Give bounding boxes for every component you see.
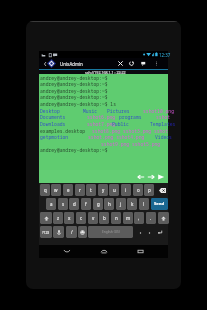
- button[interactable]: [158, 212, 169, 224]
- button[interactable]: [156, 184, 168, 196]
- button[interactable]: m: [123, 212, 133, 224]
- button[interactable]: u: [109, 184, 119, 196]
- button[interactable]: b: [99, 212, 109, 224]
- button[interactable]: z: [53, 212, 63, 224]
- button[interactable]: k: [127, 198, 137, 210]
- button[interactable]: Reconnect: [126, 58, 137, 69]
- staticText: Public: [112, 121, 129, 127]
- staticText: 12:37: [159, 52, 171, 58]
- staticText: /: [71, 229, 73, 235]
- button[interactable]: f: [81, 198, 91, 210]
- staticText: sshot: [156, 114, 171, 120]
- staticText: s: [62, 201, 65, 207]
- staticText: Music: [83, 108, 98, 114]
- staticText: getpmotion: [40, 134, 69, 140]
- button[interactable]: q: [40, 184, 50, 196]
- button[interactable]: t: [86, 184, 96, 196]
- staticText: sshot9.png sshot5.png: [101, 141, 161, 147]
- staticText: n: [115, 215, 118, 221]
- button[interactable]: h: [104, 198, 114, 210]
- button[interactable]: i: [121, 184, 131, 196]
- staticText: e: [67, 187, 70, 193]
- staticText: w: [54, 187, 58, 193]
- button[interactable]: a: [46, 198, 56, 210]
- button[interactable]: .: [146, 212, 156, 224]
- staticText: andrey@andrey-desktop:~$: [40, 147, 108, 153]
- staticText: f: [85, 201, 87, 207]
- button[interactable]: Home: [98, 246, 109, 257]
- staticText: Send: [154, 201, 165, 207]
- staticText: q: [44, 187, 47, 193]
- button[interactable]: [53, 226, 64, 238]
- staticText: r: [79, 187, 81, 193]
- button[interactable]: Disconnect: [115, 58, 126, 69]
- button[interactable]: ?123: [40, 226, 52, 238]
- staticText: Templates: [150, 121, 176, 127]
- button[interactable]: English (US): [88, 226, 133, 238]
- button[interactable]: Send: [151, 198, 168, 210]
- staticText: ?123: [42, 230, 50, 235]
- staticText: x: [68, 215, 71, 221]
- button[interactable]: x: [64, 212, 74, 224]
- staticText: sshot8.png sshot3.png sshot: [92, 128, 168, 134]
- staticText: m: [126, 215, 131, 221]
- staticText: c: [80, 215, 83, 221]
- staticText: b: [103, 215, 106, 221]
- button[interactable]: Navigate up: [39, 58, 60, 69]
- staticText: h: [108, 201, 111, 207]
- button[interactable]: o: [133, 184, 143, 196]
- button[interactable]: y: [98, 184, 108, 196]
- staticText: andrey@andrey-desktop:~$: [40, 88, 108, 94]
- button[interactable]: ,: [134, 212, 144, 224]
- staticText: v: [92, 215, 95, 221]
- button[interactable]: g: [93, 198, 103, 210]
- button[interactable]: s: [58, 198, 68, 210]
- button[interactable]: Recent apps: [135, 246, 146, 257]
- button[interactable]: d: [69, 198, 79, 210]
- button[interactable]: [78, 226, 87, 238]
- staticText: Downloads: [40, 121, 66, 127]
- staticText: sshot10.png: [143, 108, 174, 114]
- button[interactable]: [145, 226, 154, 238]
- button[interactable]: e: [63, 184, 73, 196]
- button[interactable]: Send command: [156, 171, 166, 183]
- staticText: .: [150, 215, 152, 221]
- staticText: y: [102, 187, 105, 193]
- button[interactable]: Show keyboard: [138, 58, 149, 69]
- button[interactable]: /: [66, 226, 77, 238]
- staticText: j: [120, 201, 122, 207]
- button[interactable]: r: [75, 184, 85, 196]
- button[interactable]: w: [51, 184, 61, 196]
- staticText: Desktop: [40, 108, 60, 114]
- button[interactable]: [155, 226, 165, 238]
- staticText: ,: [138, 215, 140, 221]
- staticText: a: [50, 201, 53, 207]
- button[interactable]: Move cursor right: [146, 171, 156, 183]
- staticText: u: [113, 187, 116, 193]
- button[interactable]: More options: [151, 58, 162, 69]
- button[interactable]: j: [116, 198, 126, 210]
- staticText: andrey@andrey-desktop:~$ ls: [40, 101, 116, 107]
- staticText: programs: [119, 114, 142, 120]
- staticText: i: [125, 187, 127, 193]
- staticText: k: [131, 201, 134, 207]
- staticText: ssh://192.168.1.1 : 22:22: [85, 70, 126, 74]
- button[interactable]: Back: [61, 246, 72, 257]
- staticText: d: [73, 201, 76, 207]
- staticText: l: [143, 201, 145, 207]
- staticText: sshot.png sshot4.png: [88, 134, 145, 140]
- staticText: t: [90, 187, 92, 193]
- button[interactable]: l: [139, 198, 149, 210]
- button[interactable]: Move cursor left: [136, 171, 146, 183]
- staticText: UnixAdmin: [60, 61, 83, 67]
- button[interactable]: [136, 226, 144, 238]
- staticText: g: [97, 201, 100, 207]
- button[interactable]: v: [88, 212, 98, 224]
- staticText: Videos: [155, 134, 172, 140]
- staticText: o: [137, 187, 140, 193]
- button[interactable]: c: [76, 212, 86, 224]
- button[interactable]: [40, 212, 52, 224]
- button[interactable]: p: [144, 184, 154, 196]
- staticText: examples.desktop: [40, 128, 86, 134]
- button[interactable]: n: [111, 212, 121, 224]
